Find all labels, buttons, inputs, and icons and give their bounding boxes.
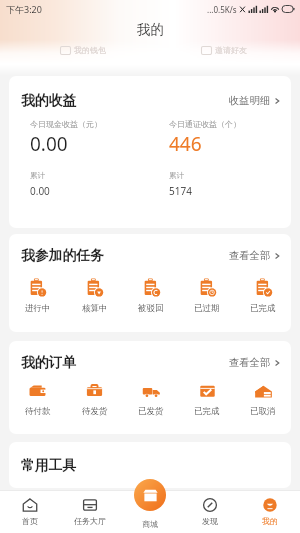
staticText: 累计 bbox=[169, 171, 184, 180]
staticText: 商城 bbox=[142, 519, 158, 529]
button[interactable]: 核算中 bbox=[66, 278, 123, 314]
staticText: ...0.5K/s bbox=[207, 4, 237, 15]
staticText: 被驳回 bbox=[138, 303, 164, 314]
button[interactable]: 进行中 bbox=[9, 278, 66, 314]
staticText: 常用工具 bbox=[21, 457, 77, 474]
staticText: 待付款 bbox=[25, 406, 51, 417]
button[interactable]: 商城 bbox=[120, 490, 180, 533]
staticText: 446 bbox=[169, 131, 202, 157]
button[interactable]: 任务大厅 bbox=[60, 490, 120, 533]
staticText: 我的 bbox=[137, 21, 164, 38]
staticText: 下午3:20 bbox=[6, 3, 42, 15]
button[interactable]: 我的钱包 bbox=[58, 43, 108, 57]
staticText: 已过期 bbox=[194, 303, 220, 314]
staticText: 发现 bbox=[202, 516, 218, 526]
staticText: 我的收益 bbox=[21, 92, 77, 109]
button[interactable]: 发现 bbox=[180, 490, 240, 533]
button[interactable]: 查看全部 bbox=[227, 354, 283, 371]
staticText: 5174 bbox=[169, 184, 192, 198]
button[interactable]: 待发货 bbox=[66, 382, 123, 417]
staticText: 查看全部 bbox=[229, 356, 271, 369]
staticText: 首页 bbox=[22, 516, 38, 526]
staticText: 已取消 bbox=[250, 406, 276, 417]
staticText: 今日通证收益（个） bbox=[169, 119, 241, 129]
button[interactable]: 待付款 bbox=[9, 382, 66, 417]
staticText: 我的钱包 bbox=[74, 45, 106, 55]
staticText: 核算中 bbox=[82, 303, 108, 314]
staticText: 待发货 bbox=[82, 406, 108, 417]
staticText: 任务大厅 bbox=[74, 516, 106, 526]
staticText: 0.00 bbox=[30, 131, 68, 157]
button[interactable]: 我的 bbox=[240, 490, 300, 533]
staticText: 我的订单 bbox=[21, 354, 77, 371]
staticText: 已完成 bbox=[194, 406, 220, 417]
button[interactable]: 已完成 bbox=[179, 382, 235, 417]
button[interactable]: 已发货 bbox=[123, 382, 179, 417]
button[interactable]: 已取消 bbox=[235, 382, 291, 417]
button[interactable]: 已完成 bbox=[235, 278, 291, 314]
staticText: 进行中 bbox=[25, 303, 51, 314]
button[interactable]: 已过期 bbox=[179, 278, 235, 314]
staticText: 我的 bbox=[262, 516, 278, 526]
staticText: 收益明细 bbox=[229, 94, 271, 107]
staticText: 今日现金收益（元） bbox=[30, 119, 102, 129]
staticText: 查看全部 bbox=[229, 249, 271, 262]
staticText: 累计 bbox=[30, 171, 45, 180]
staticText: 邀请好友 bbox=[215, 45, 247, 55]
staticText: 0.00 bbox=[30, 184, 50, 198]
staticText: 我参加的任务 bbox=[21, 247, 104, 264]
button[interactable]: 被驳回 bbox=[123, 278, 179, 314]
staticText: 已发货 bbox=[138, 406, 164, 417]
button[interactable]: 首页 bbox=[0, 490, 60, 533]
staticText: 已完成 bbox=[250, 303, 276, 314]
button[interactable]: 查看全部 bbox=[227, 247, 283, 264]
button[interactable]: 邀请好友 bbox=[199, 43, 249, 57]
button[interactable]: 收益明细 bbox=[227, 92, 283, 109]
